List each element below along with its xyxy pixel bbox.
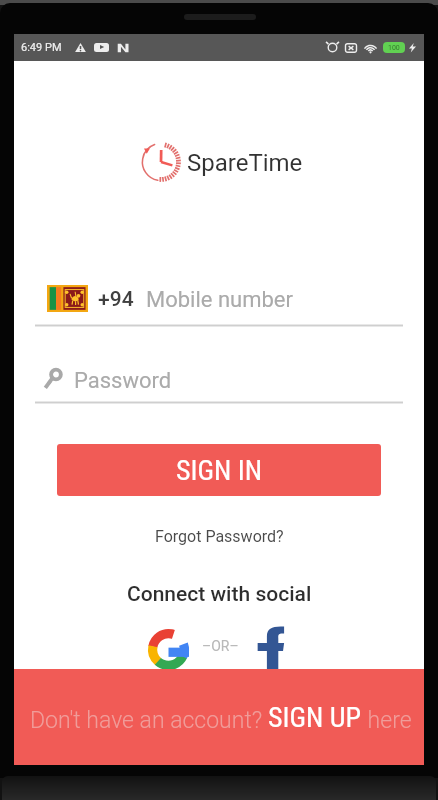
staticText: SpareTime (187, 149, 303, 177)
staticText: 100 (388, 44, 400, 52)
staticText: Connect with social (127, 582, 312, 607)
staticText: –OR– (202, 638, 239, 654)
button[interactable]: Sign in with Facebook (254, 625, 297, 670)
staticText: SIGN UP (268, 701, 362, 734)
button[interactable]: Don't have an account? (14, 669, 424, 765)
button[interactable]: SIGN IN (57, 444, 381, 496)
staticText: Don't have an account? (30, 707, 268, 734)
staticText: +94 (98, 287, 134, 312)
button[interactable]: Sign in with Google (148, 629, 189, 670)
staticText: 6:49 PM (21, 41, 62, 54)
staticText: Mobile number (146, 287, 293, 313)
staticText: Password (74, 368, 172, 394)
staticText: here (362, 707, 412, 734)
staticText: SIGN IN (176, 454, 263, 487)
staticText: Forgot Password? (155, 527, 284, 546)
button[interactable]: Forgot Password? (155, 527, 284, 546)
